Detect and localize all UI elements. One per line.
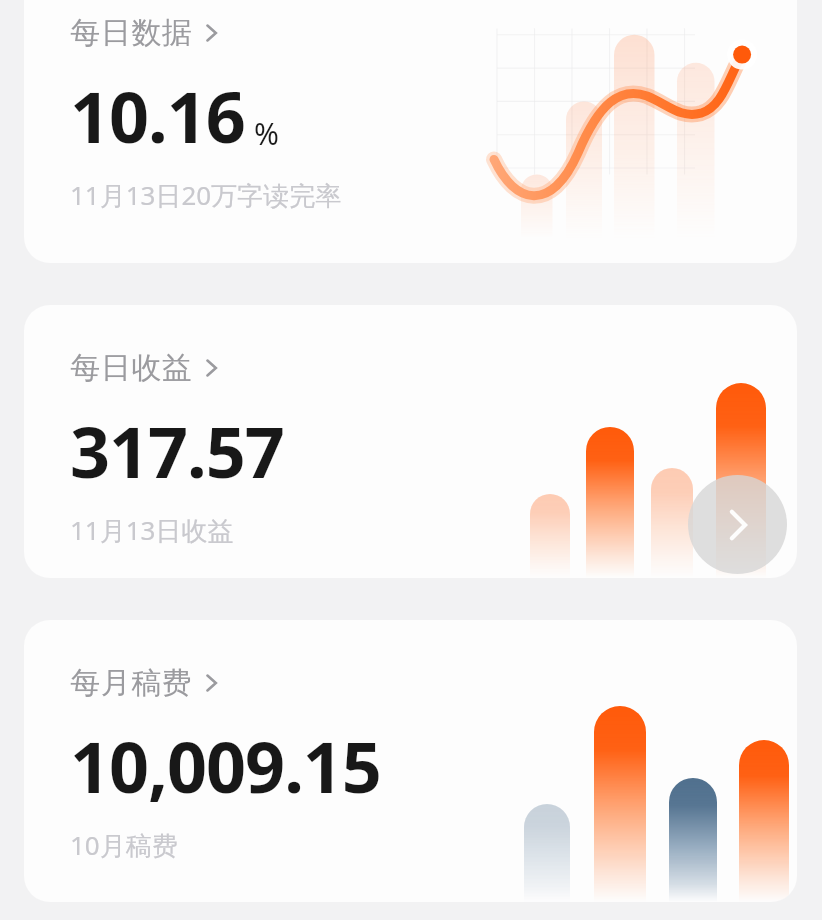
staticText: 每月稿费 [70,664,192,702]
staticText: % [254,113,279,154]
staticText: 每日数据 [70,14,192,52]
staticText: 317.57 [70,403,284,498]
button[interactable]: 每日数据 [24,0,797,263]
staticText: 11月13日收益 [70,512,234,548]
staticText: 10,009.15 [70,718,381,813]
staticText: 每日收益 [70,349,192,387]
button[interactable]: 查看更多 [688,475,787,574]
staticText: 10月稿费 [70,827,178,863]
button[interactable]: 查看更多 [24,305,797,578]
button[interactable]: 每月稿费 [24,620,797,902]
staticText: 10.16 [70,68,245,163]
staticText: 11月13日20万字读完率 [70,177,342,213]
